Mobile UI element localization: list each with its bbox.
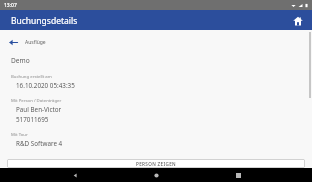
button[interactable]: Ausflüge (0, 35, 312, 50)
staticText: Buchungsdetails (11, 15, 78, 27)
staticText: Mit Person / Datenträger (11, 97, 62, 103)
staticText: Demo (11, 56, 30, 65)
staticText: PERSON ZEIGEN (136, 161, 176, 167)
button[interactable]: Recent apps (231, 168, 245, 182)
button[interactable]: PERSON ZEIGEN (7, 159, 305, 168)
staticText: 517011695 (16, 115, 49, 124)
staticText: 16.10.2020 05:43:35 (16, 81, 75, 90)
staticText: Ausflüge (25, 39, 46, 46)
staticText: R&D Software 4 (16, 139, 63, 148)
button[interactable]: Home (290, 13, 306, 29)
staticText: Buchung erstellt am (11, 73, 52, 79)
staticText: Paul Ben-Victor (16, 105, 62, 114)
button[interactable]: Back (68, 168, 82, 182)
staticText: 13:07 (4, 2, 17, 9)
staticText: Mit Tour (11, 131, 28, 137)
button[interactable]: Home (149, 168, 163, 182)
